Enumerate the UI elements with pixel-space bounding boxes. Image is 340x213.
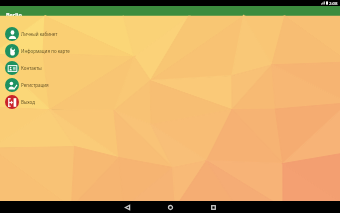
staticText: Выход (21, 99, 35, 105)
button[interactable]: Home (149, 201, 192, 213)
button[interactable]: Личный кабинет (0, 25, 340, 42)
button[interactable]: Регистрация (0, 76, 340, 93)
button[interactable]: Back (106, 201, 149, 213)
button[interactable]: Выход (0, 93, 340, 110)
button[interactable]: Информация по карте (0, 42, 340, 59)
staticText: 2:08 (329, 0, 338, 6)
button[interactable]: Контакты (0, 59, 340, 76)
staticText: Регистрация (21, 82, 49, 88)
staticText: Информация по карте (21, 48, 70, 54)
staticText: Berlio (6, 11, 22, 18)
button[interactable]: Recents (192, 201, 235, 213)
staticText: Личный кабинет (21, 31, 58, 37)
staticText: Контакты (21, 65, 42, 71)
